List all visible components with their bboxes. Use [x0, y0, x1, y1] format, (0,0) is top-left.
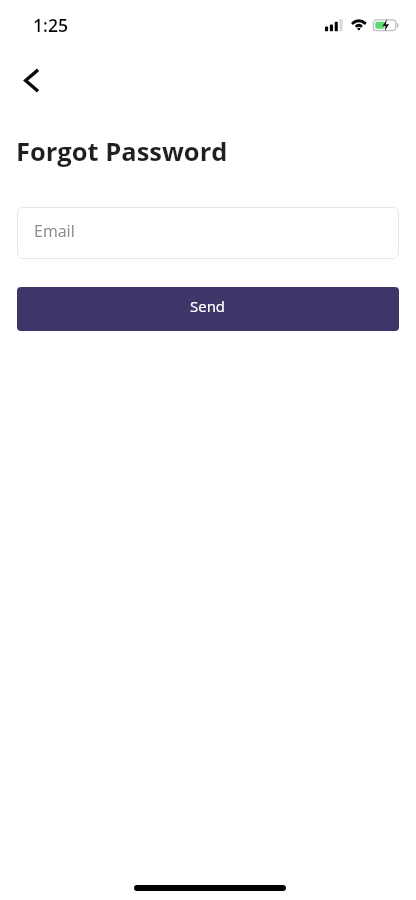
staticText: Email [34, 220, 75, 242]
button[interactable]: Email [17, 207, 399, 259]
button[interactable]: Send [17, 287, 399, 331]
staticText: Forgot Password [16, 134, 228, 169]
staticText: Send [190, 296, 226, 316]
button[interactable]: Back [7, 56, 55, 104]
staticText: 1:25 [33, 13, 68, 37]
